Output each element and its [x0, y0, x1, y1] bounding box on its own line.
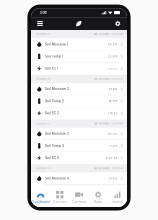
staticText: Sensor A3: [36, 122, 51, 125]
button[interactable]: Cameras: [69, 185, 89, 208]
button[interactable]: Soil EC 1: [31, 63, 127, 75]
staticText: 40.0%: [108, 132, 118, 135]
button[interactable]: Soil Moisture 2: [31, 83, 127, 95]
staticText: Cameras: [71, 199, 86, 204]
staticText: Sensor A1: [36, 33, 50, 36]
button[interactable]: Soil EC 3: [31, 152, 127, 164]
staticText: Sensor A2: [36, 77, 51, 80]
staticText: Soil EC 1: [45, 67, 58, 70]
button[interactable]: Soil Moisture 3: [31, 128, 127, 140]
button[interactable]: Devices: [50, 185, 69, 208]
staticText: 4.07 EC: [106, 156, 118, 159]
button[interactable]: Soil EC 2: [31, 107, 127, 119]
staticText: 27.4%: [109, 177, 118, 180]
button[interactable]: Soil Temp 3: [31, 140, 127, 152]
button[interactable]: Soil Moisture 1: [31, 38, 127, 51]
button[interactable]: Soil Temp 2: [31, 95, 127, 107]
staticText: Soil Temp 1: [45, 55, 63, 58]
button[interactable]: Settings: [113, 18, 123, 29]
staticText: Rules: [94, 199, 103, 204]
staticText: 3:08: [39, 10, 46, 15]
staticText: Devices: [53, 199, 67, 204]
staticText: Soil Moisture 4: [45, 177, 69, 180]
button[interactable]: Menu: [35, 19, 45, 28]
button[interactable]: Rules: [89, 185, 108, 208]
staticText: 30.3%: [108, 43, 118, 46]
staticText: Soil EC 3: [45, 156, 59, 160]
staticText: Last Updated: 3:05 PM: [93, 33, 122, 36]
staticText: Soil Moisture 2: [45, 87, 69, 91]
staticText: Soil Moisture 3: [45, 132, 69, 135]
button[interactable]: Journal: [108, 185, 127, 208]
staticText: 72.6°F: [108, 55, 118, 58]
staticText: Last Updated: 3:05 PM: [93, 167, 122, 170]
button[interactable]: Soil Temp 1: [31, 51, 127, 63]
staticText: 71.9°F: [109, 144, 118, 147]
button[interactable]: Soil Moisture 4: [31, 173, 127, 185]
staticText: Sensor A4: [36, 167, 51, 170]
staticText: Soil Moisture 1: [45, 43, 68, 46]
staticText: Last Updated: 3:05 PM: [93, 122, 122, 125]
staticText: Journal: [111, 199, 123, 204]
staticText: 1.14 EC: [108, 112, 118, 115]
staticText: 31.9%: [109, 87, 118, 91]
staticText: Soil Temp 3: [45, 144, 64, 148]
button[interactable]: Dashboard: [31, 185, 50, 208]
staticText: 1.20 EC: [107, 67, 118, 70]
staticText: 74.0°F: [109, 99, 118, 103]
staticText: Soil Temp 2: [45, 99, 64, 103]
staticText: Soil EC 2: [45, 111, 59, 115]
staticText: Last Updated: 3:05 PM: [93, 77, 122, 80]
staticText: Dashboard: [32, 199, 50, 204]
